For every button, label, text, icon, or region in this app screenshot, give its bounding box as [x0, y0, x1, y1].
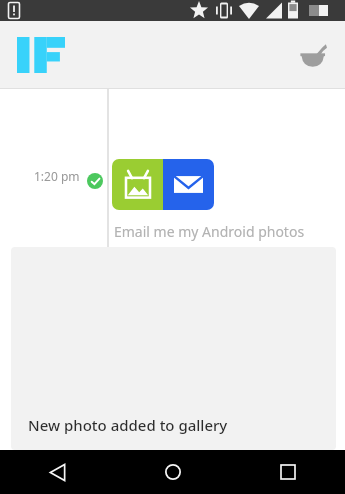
button[interactable]: New photo added to gallery	[11, 247, 336, 450]
button[interactable]: Recent apps	[230, 450, 345, 494]
staticText: New photo added to gallery	[28, 415, 228, 435]
staticText: Email me my Android photos	[114, 222, 305, 241]
staticText: 1:20 pm	[34, 168, 80, 184]
button[interactable]: Home	[115, 450, 230, 494]
button[interactable]: Email me my Android photos applet	[112, 159, 214, 210]
button[interactable]: Back	[0, 450, 115, 494]
button[interactable]: IF home	[17, 37, 65, 73]
button[interactable]: Recipes	[293, 35, 333, 75]
